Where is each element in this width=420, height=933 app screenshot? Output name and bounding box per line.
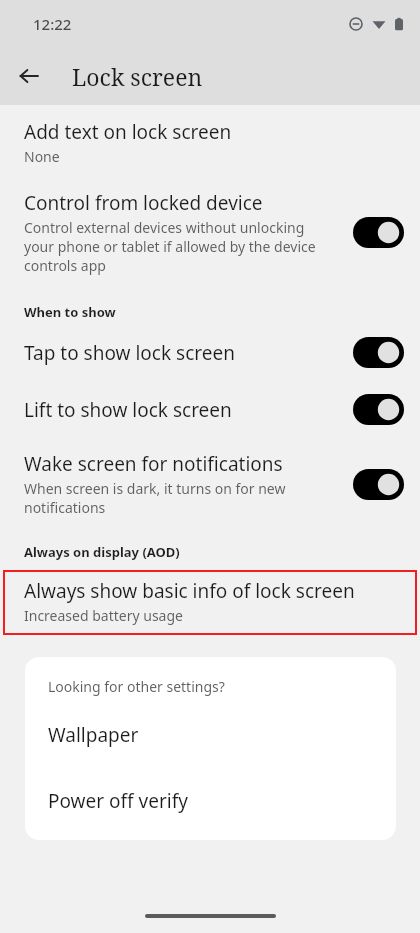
staticText: Control external devices without unlocki…: [24, 218, 333, 275]
button[interactable]: Always show basic info of lock screen: [3, 570, 417, 635]
button[interactable]: Lift to show lock screen: [0, 394, 420, 425]
staticText: When screen is dark, it turns on for new…: [24, 479, 333, 517]
staticText: Looking for other settings?: [48, 677, 225, 696]
staticText: When to show: [24, 303, 116, 321]
staticText: None: [24, 147, 393, 166]
staticText: Tap to show lock screen: [24, 340, 235, 366]
staticText: Wake screen for notifications: [24, 451, 283, 477]
button[interactable]: Wallpaper: [25, 716, 396, 754]
staticText: Lift to show lock screen: [24, 397, 232, 423]
staticText: Lock screen: [72, 61, 203, 92]
staticText: Always on display (AOD): [24, 543, 180, 561]
staticText: Wallpaper: [48, 722, 139, 748]
button[interactable]: Back: [10, 57, 48, 95]
button[interactable]: Wake screen for notifications: [0, 451, 420, 517]
button[interactable]: Add text on lock screen: [0, 119, 420, 166]
button[interactable]: Power off verify: [25, 782, 396, 820]
button[interactable]: Control from locked device: [0, 190, 420, 275]
staticText: Always show basic info of lock screen: [24, 578, 355, 604]
button[interactable]: Toggle: [353, 469, 404, 500]
staticText: Control from locked device: [24, 190, 263, 216]
staticText: 12:22: [33, 14, 72, 34]
staticText: Power off verify: [48, 788, 188, 814]
staticText: Add text on lock screen: [24, 119, 232, 145]
button[interactable]: Toggle: [353, 394, 404, 425]
button[interactable]: Tap to show lock screen: [0, 337, 420, 368]
staticText: Increased battery usage: [24, 606, 183, 625]
button[interactable]: Toggle: [353, 217, 404, 248]
button[interactable]: Toggle: [353, 337, 404, 368]
